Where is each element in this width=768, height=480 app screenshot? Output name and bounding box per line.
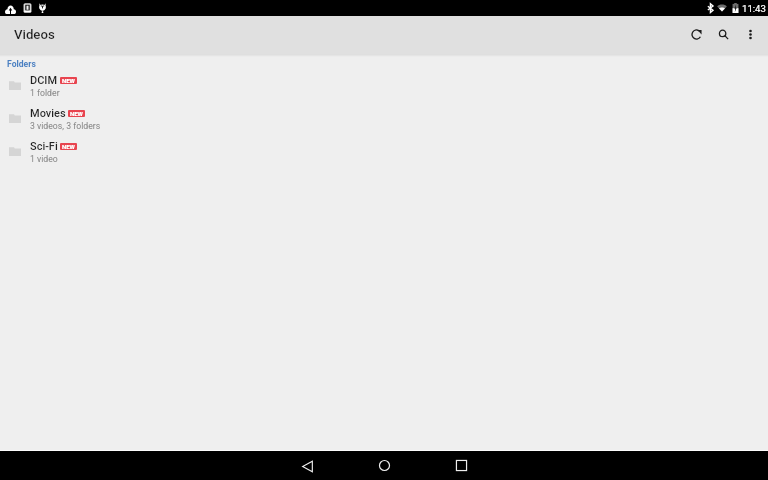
button[interactable]: Sci-Fi <box>0 135 768 168</box>
staticText: 1 video <box>30 154 58 164</box>
staticText: NEW <box>62 143 75 150</box>
staticText: NEW <box>70 110 83 117</box>
button[interactable]: DCIM <box>0 69 768 102</box>
button[interactable]: More options <box>736 20 764 48</box>
button[interactable]: Refresh <box>682 20 710 48</box>
button[interactable]: Movies <box>0 102 768 135</box>
staticText: Sci-Fi <box>30 140 58 153</box>
staticText: DCIM <box>30 74 58 87</box>
staticText: Movies <box>30 107 66 120</box>
staticText: NEW <box>62 77 75 84</box>
button[interactable]: Back <box>293 452 321 480</box>
staticText: Folders <box>7 59 36 69</box>
button[interactable]: Search <box>709 20 737 48</box>
button[interactable]: Home <box>370 451 398 479</box>
staticText: Videos <box>14 27 55 42</box>
button[interactable]: Recent apps <box>447 451 475 479</box>
staticText: 3 videos, 3 folders <box>30 121 101 131</box>
staticText: 11:43 <box>742 3 766 14</box>
staticText: 1 folder <box>30 88 60 98</box>
